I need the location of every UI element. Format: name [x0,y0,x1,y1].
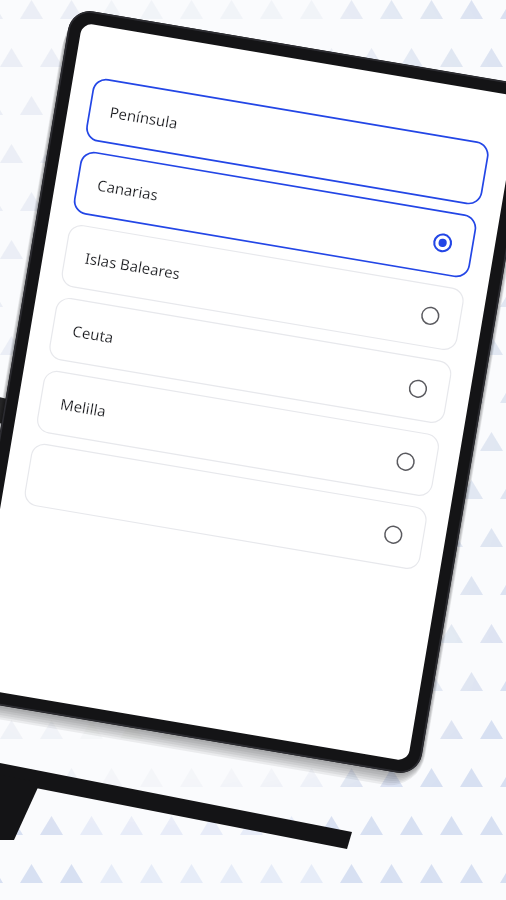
button[interactable]: Islas Baleares [89,241,447,361]
button[interactable]: Canarias [102,167,460,287]
button[interactable]: Ceuta [75,315,433,435]
button[interactable]: Otra región [47,463,405,583]
button[interactable]: Península [115,93,473,213]
button[interactable]: Melilla [61,389,419,509]
